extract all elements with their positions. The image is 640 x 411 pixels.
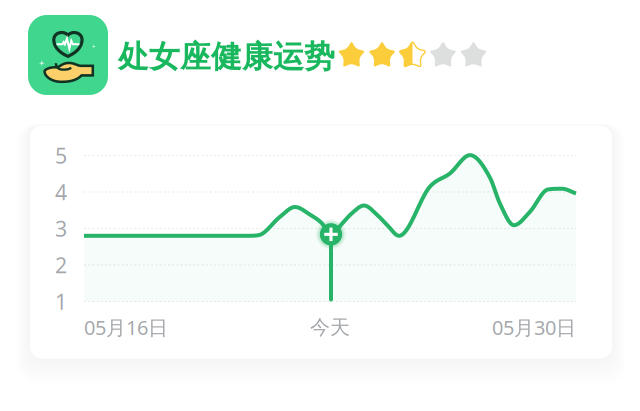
staticText: 05月16日 bbox=[84, 314, 168, 341]
staticText: 1 bbox=[55, 287, 67, 316]
staticText: 2 bbox=[55, 251, 67, 279]
staticText: 4 bbox=[55, 178, 67, 206]
staticText: 处女座健康运势 bbox=[118, 38, 335, 76]
staticText: 今天 bbox=[310, 315, 350, 340]
staticText: 5 bbox=[55, 141, 67, 170]
staticText: 05月30日 bbox=[492, 314, 576, 341]
staticText: 3 bbox=[55, 214, 67, 243]
